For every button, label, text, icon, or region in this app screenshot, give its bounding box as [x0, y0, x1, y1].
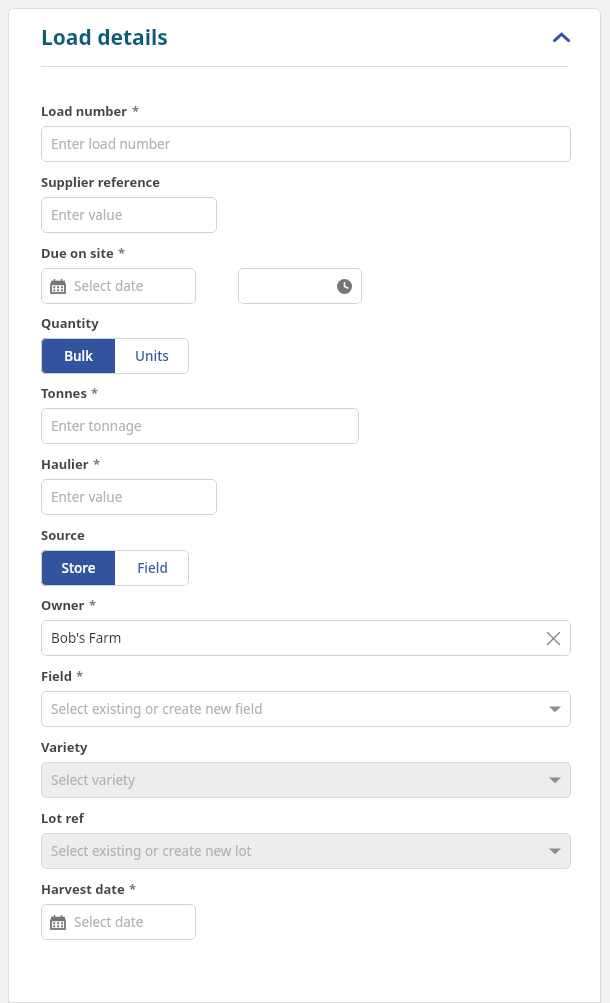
staticText: Lot ref [41, 809, 84, 827]
button[interactable]: Open lot list [549, 845, 561, 857]
button[interactable]: Select time [238, 268, 362, 304]
button[interactable]: Enter value [41, 197, 217, 233]
button[interactable]: Load details [8, 8, 601, 66]
staticText: Enter tonnage [51, 417, 142, 435]
button[interactable]: Bulk [41, 338, 115, 374]
staticText: Field [137, 559, 168, 577]
staticText: Load number [41, 102, 128, 120]
button[interactable]: Select time [337, 279, 352, 294]
button[interactable]: Bob's Farm [41, 620, 571, 656]
button[interactable]: Enter value [41, 479, 217, 515]
staticText: Load details [41, 23, 168, 52]
staticText: Select existing or create new field [51, 700, 263, 718]
staticText: Select existing or create new lot [51, 842, 252, 860]
staticText: Quantity [41, 314, 99, 332]
button[interactable]: Select existing or create new lot [41, 833, 571, 869]
button[interactable]: Select existing or create new field [41, 691, 571, 727]
staticText: * [76, 667, 84, 685]
staticText: Units [135, 347, 169, 365]
staticText: * [129, 880, 137, 898]
staticText: * [118, 244, 126, 262]
staticText: * [93, 455, 101, 473]
button[interactable]: Select date [41, 904, 196, 940]
staticText: * [132, 102, 140, 120]
staticText: Haulier [41, 455, 89, 473]
staticText: Variety [41, 738, 88, 756]
staticText: * [89, 596, 97, 614]
staticText: Bob's Farm [51, 629, 122, 647]
button[interactable]: Open field list [549, 703, 561, 715]
staticText: Field [41, 667, 72, 685]
staticText: Owner [41, 596, 85, 614]
staticText: Harvest date [41, 880, 125, 898]
button[interactable]: Select variety [41, 762, 571, 798]
staticText: Tonnes [41, 384, 87, 402]
staticText: Store [61, 559, 96, 577]
button[interactable]: Clear owner [546, 631, 561, 646]
button[interactable]: Store [41, 550, 115, 586]
staticText: Enter value [51, 206, 123, 224]
button[interactable]: Units [115, 338, 189, 374]
staticText: Select date [74, 277, 144, 295]
staticText: Enter value [51, 488, 123, 506]
staticText: * [91, 384, 99, 402]
other: Collapse section [548, 24, 574, 50]
button[interactable]: Open variety list [549, 774, 561, 786]
staticText: Select variety [51, 771, 135, 789]
staticText: Due on site [41, 244, 114, 262]
staticText: Select date [74, 913, 144, 931]
button[interactable]: Select date [41, 268, 196, 304]
button[interactable]: Enter load number [41, 126, 571, 162]
staticText: Supplier reference [41, 173, 161, 191]
staticText: Bulk [64, 347, 93, 365]
staticText: Source [41, 526, 85, 544]
button[interactable]: Enter tonnage [41, 408, 359, 444]
button[interactable]: Field [115, 550, 189, 586]
staticText: Enter load number [51, 135, 171, 153]
